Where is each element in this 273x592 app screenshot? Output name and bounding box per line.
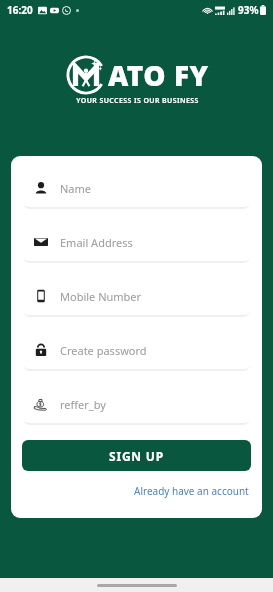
button[interactable]: Create password [22, 331, 251, 369]
staticText: 93% [238, 3, 259, 17]
staticText: Mobile Number [60, 289, 142, 304]
staticText: Name [60, 181, 92, 196]
button[interactable]: Email Address [22, 223, 251, 261]
button[interactable]: Mobile Number [22, 277, 251, 315]
button[interactable]: SIGN UP [22, 440, 251, 471]
staticText: SIGN UP [109, 448, 164, 464]
staticText: YOUR SUCCESS IS OUR BUSINESS [76, 96, 199, 106]
staticText: Email Address [60, 235, 133, 250]
button[interactable]: Already have an account [132, 482, 251, 500]
button[interactable]: reffer_by [22, 385, 251, 423]
staticText: 16:20 [7, 3, 33, 17]
staticText: Create password [60, 343, 147, 358]
button[interactable]: Name [22, 169, 251, 207]
staticText: reffer_by [60, 397, 106, 412]
staticText: Already have an account [134, 484, 249, 498]
staticText: ATO FY [108, 56, 209, 94]
